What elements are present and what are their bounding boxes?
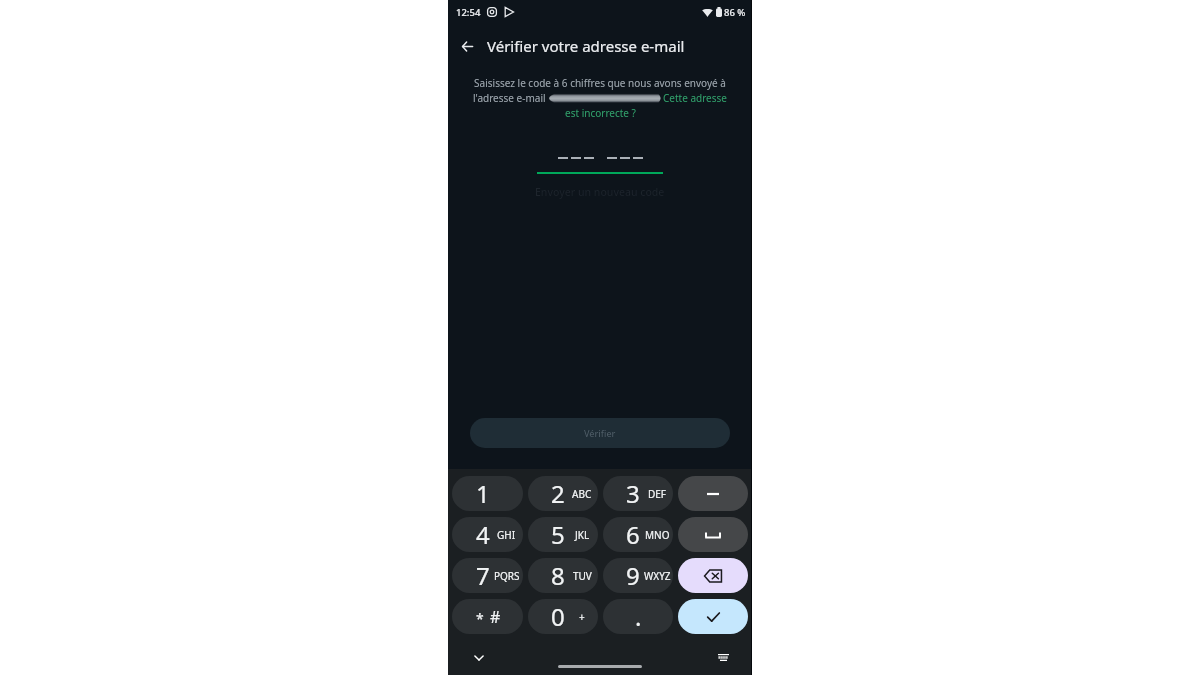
staticText: ABC (572, 487, 592, 501)
staticText: WXYZ (644, 569, 671, 583)
button[interactable]: 9 (603, 558, 673, 593)
button[interactable]: Dash (678, 476, 748, 511)
other: Dash (707, 492, 719, 496)
staticText: . (635, 600, 642, 633)
button[interactable]: 4 (452, 517, 523, 552)
staticText: Saisissez le code à 6 chiffres que nous … (474, 76, 726, 90)
staticText: TUV (573, 569, 592, 583)
staticText: 12:54 (456, 6, 481, 19)
staticText: + (579, 610, 585, 624)
button[interactable]: Code à 6 chiffres (537, 157, 663, 174)
staticText: Vérifier votre adresse e-mail (487, 36, 685, 56)
staticText: 7 (476, 559, 490, 592)
button[interactable]: 5 (528, 517, 598, 552)
staticText: 1 (476, 477, 490, 510)
staticText: l'adresse e-mail (473, 91, 546, 105)
button[interactable]: * (452, 599, 523, 634)
staticText: 6 (626, 518, 640, 551)
button[interactable]: . (603, 599, 673, 634)
staticText: DEF (648, 487, 667, 501)
staticText: * (476, 609, 484, 628)
button[interactable]: 8 (528, 558, 598, 593)
staticText: est incorrecte ? (565, 106, 636, 120)
button[interactable]: 2 (528, 476, 598, 511)
button[interactable]: Cette adresse (663, 91, 727, 105)
button[interactable]: 3 (603, 476, 673, 511)
staticText: Cette adresse (663, 91, 727, 105)
staticText: 9 (626, 559, 640, 592)
staticText: 0 (551, 600, 565, 633)
button[interactable]: 6 (603, 517, 673, 552)
staticText: # (490, 606, 501, 628)
staticText: MNO (645, 528, 670, 542)
other: Backspace (704, 569, 722, 583)
staticText: 86 % (724, 6, 746, 19)
staticText: 2 (551, 477, 565, 510)
button[interactable]: Space (678, 517, 748, 552)
button[interactable]: 1 (452, 476, 523, 511)
button[interactable]: Vérifier (470, 418, 730, 448)
other: Space (705, 531, 721, 539)
staticText: 5 (551, 518, 565, 551)
button[interactable]: Enter (678, 599, 748, 634)
button[interactable]: Back (451, 30, 483, 62)
button[interactable]: est incorrecte ? (565, 106, 636, 120)
button[interactable]: Switch keyboard (712, 646, 734, 668)
staticText: JKL (575, 528, 590, 542)
staticText: Vérifier (584, 427, 616, 439)
other: Enter (707, 612, 720, 622)
staticText: 3 (626, 477, 640, 510)
button[interactable]: Envoyer un nouveau code (535, 185, 665, 199)
button[interactable]: Hide keyboard (468, 647, 490, 669)
staticText: PQRS (494, 569, 520, 583)
button[interactable]: Backspace (678, 558, 748, 593)
staticText: 8 (551, 559, 565, 592)
button[interactable]: 7 (452, 558, 523, 593)
staticText: Envoyer un nouveau code (535, 185, 665, 199)
staticText: GHI (497, 528, 516, 542)
button[interactable]: 0 (528, 599, 598, 634)
staticText: 4 (476, 518, 490, 551)
